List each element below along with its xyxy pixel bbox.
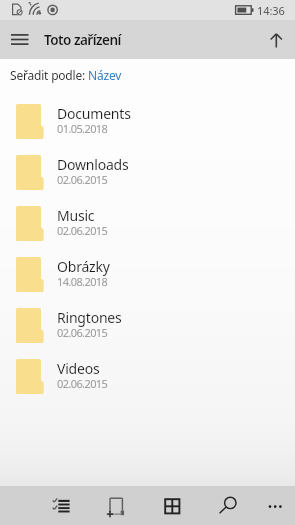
button[interactable]: Downloads <box>0 147 295 198</box>
staticText: 14:36 <box>257 3 285 18</box>
staticText: 02.06.2015 <box>57 325 108 340</box>
staticText: 02.06.2015 <box>57 172 108 187</box>
button[interactable]: Ringtones <box>0 300 295 351</box>
button[interactable]: Obrázky <box>0 249 295 300</box>
staticText: Ringtones <box>57 308 122 327</box>
staticText: 01.05.2018 <box>57 121 108 136</box>
staticText: 02.06.2015 <box>57 376 108 391</box>
staticText: Music <box>57 206 95 225</box>
button[interactable]: Documents <box>0 96 295 147</box>
button[interactable]: Název <box>88 67 122 83</box>
button[interactable]: Change view <box>118 486 177 525</box>
staticText: 02.06.2015 <box>57 223 108 238</box>
button[interactable]: Up one level <box>255 20 295 59</box>
button[interactable]: Music <box>0 198 295 249</box>
staticText: Název <box>88 67 122 83</box>
staticText: Videos <box>57 359 100 378</box>
staticText: 14.08.2018 <box>57 274 108 289</box>
button[interactable]: New folder <box>59 486 118 525</box>
button[interactable]: Select <box>0 486 59 525</box>
button[interactable]: Menu <box>0 20 39 59</box>
staticText: Downloads <box>57 155 129 174</box>
button[interactable]: Videos <box>0 351 295 402</box>
staticText: Toto zařízení <box>44 31 121 49</box>
staticText: Documents <box>57 104 131 123</box>
staticText: Obrázky <box>57 257 110 276</box>
button[interactable]: Search <box>177 486 236 525</box>
button[interactable]: More options <box>236 486 295 525</box>
staticText: Seřadit podle: <box>10 67 88 83</box>
